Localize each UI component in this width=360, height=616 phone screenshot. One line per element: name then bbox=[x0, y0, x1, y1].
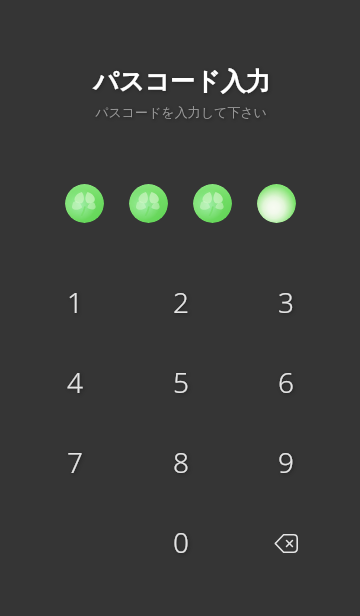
staticText: パスコード入力 bbox=[93, 66, 271, 97]
button[interactable]: 8 bbox=[128, 422, 233, 502]
button[interactable]: 4 bbox=[22, 342, 128, 422]
button[interactable]: 9 bbox=[233, 422, 338, 502]
staticText: 3 bbox=[278, 283, 294, 321]
staticText: 2 bbox=[173, 283, 189, 321]
staticText: 0 bbox=[173, 523, 189, 561]
button[interactable]: 3 bbox=[233, 262, 338, 342]
staticText: 6 bbox=[278, 363, 294, 401]
staticText: パスコードを入力して下さい bbox=[95, 104, 267, 120]
staticText: 8 bbox=[173, 443, 189, 481]
staticText: 7 bbox=[67, 443, 83, 481]
staticText: 9 bbox=[278, 443, 294, 481]
staticText: 1 bbox=[67, 283, 83, 321]
button[interactable]: 2 bbox=[128, 262, 233, 342]
button[interactable]: Delete bbox=[233, 502, 338, 582]
staticText: 4 bbox=[67, 363, 83, 401]
staticText: 5 bbox=[173, 363, 189, 401]
button[interactable]: 1 bbox=[22, 262, 128, 342]
button[interactable]: 7 bbox=[22, 422, 128, 502]
button[interactable]: 0 bbox=[128, 502, 233, 582]
button[interactable]: 6 bbox=[233, 342, 338, 422]
button[interactable]: 5 bbox=[128, 342, 233, 422]
